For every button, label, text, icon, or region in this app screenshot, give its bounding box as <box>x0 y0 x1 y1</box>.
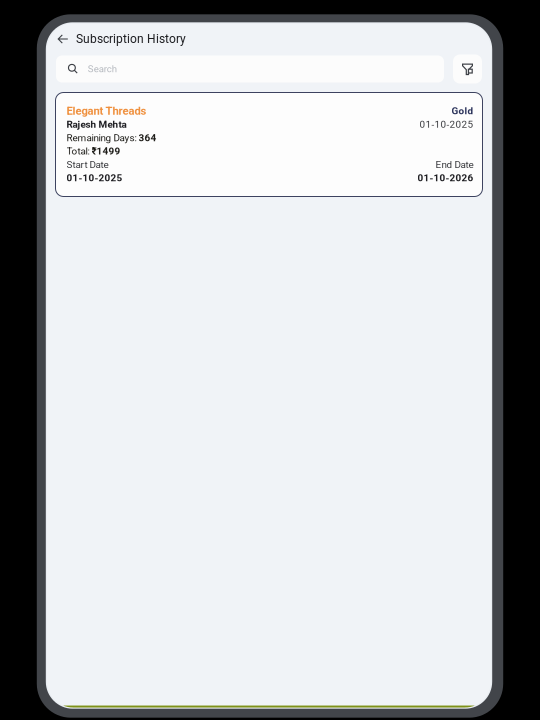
staticText: Search <box>88 63 117 75</box>
staticText: Elegant Threads <box>66 104 146 117</box>
button[interactable]: Elegant Threads <box>55 92 482 196</box>
button[interactable]: Filter <box>453 54 482 83</box>
staticText: 01-10-2026 <box>417 172 473 184</box>
button[interactable]: Back <box>53 27 73 51</box>
staticText: Total: ₹1499 <box>66 146 120 157</box>
staticText: 01-10-2025 <box>66 172 122 184</box>
staticText: Rajesh Mehta <box>66 119 126 130</box>
staticText: Remaining Days: 364 <box>66 132 156 143</box>
staticText: 01-10-2025 <box>419 119 473 130</box>
staticText: End Date <box>435 159 473 170</box>
staticText: Gold <box>451 105 473 117</box>
staticText: Subscription History <box>76 32 186 46</box>
staticText: Start Date <box>66 159 108 170</box>
